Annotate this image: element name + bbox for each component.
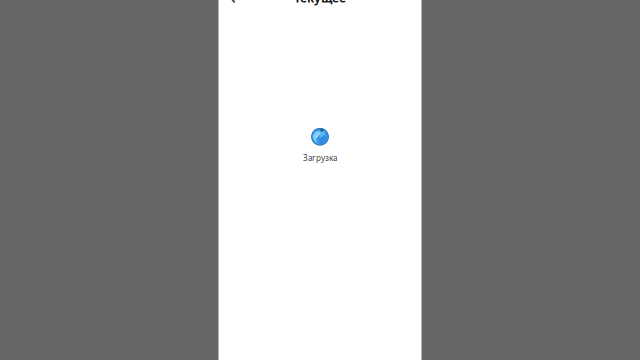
staticText: Загрузка [303, 152, 337, 163]
button[interactable]: Back [218, 0, 250, 12]
staticText: Текущее [294, 0, 346, 6]
